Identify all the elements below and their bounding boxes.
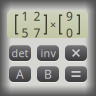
staticText: 0 (66, 25, 73, 41)
staticText: 1 (21, 8, 28, 24)
staticText: 2 (33, 8, 40, 24)
button[interactable]: B (37, 66, 59, 82)
staticText: 5 (21, 25, 28, 41)
staticText: inv (40, 46, 55, 60)
button[interactable]: A (9, 66, 31, 82)
button[interactable]: det (9, 45, 31, 61)
button[interactable]: inv (37, 45, 59, 61)
staticText: × (50, 17, 56, 32)
staticText: A (16, 66, 24, 82)
button[interactable]: Equals (65, 66, 87, 82)
staticText: 9 (66, 8, 73, 24)
button[interactable]: Multiply (65, 45, 87, 61)
staticText: 7 (33, 25, 40, 41)
staticText: det (11, 46, 28, 60)
staticText: B (44, 66, 52, 82)
